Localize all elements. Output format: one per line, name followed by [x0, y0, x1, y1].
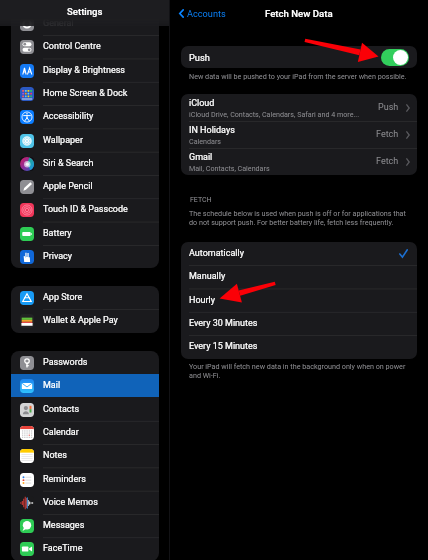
staticText: Fetch	[376, 156, 399, 167]
staticText: Passwords	[43, 357, 88, 368]
staticText: FETCH	[190, 196, 212, 204]
staticText: Touch ID & Passcode	[43, 204, 128, 215]
button[interactable]: Touch ID & Passcode	[11, 198, 159, 221]
button[interactable]: Siri & Search	[11, 152, 159, 175]
button[interactable]: Display & Brightness	[11, 59, 159, 82]
staticText: Apple Pencil	[43, 181, 93, 192]
button[interactable]: Passwords	[11, 351, 159, 374]
staticText: Messages	[43, 520, 85, 531]
staticText: Mail, Contacts, Calendars	[189, 164, 270, 172]
staticText: Gmail	[189, 152, 213, 163]
staticText: Wallet & Apple Pay	[43, 315, 118, 326]
staticText: Every 15 Minutes	[189, 341, 258, 352]
staticText: Calendars	[189, 137, 222, 145]
button[interactable]: Wallet & Apple Pay	[11, 309, 159, 332]
button[interactable]: Calendar	[11, 421, 159, 444]
button[interactable]: Battery	[11, 222, 159, 245]
button[interactable]: Control Centre	[11, 35, 159, 58]
staticText: Push	[378, 102, 399, 113]
staticText: Reminders	[43, 474, 86, 485]
staticText: Hourly	[189, 295, 216, 306]
button[interactable]: Gmail	[181, 148, 417, 175]
staticText: App Store	[43, 292, 83, 303]
button[interactable]: Hourly	[181, 289, 417, 312]
staticText: The schedule below is used when push is …	[189, 209, 415, 227]
button[interactable]: Voice Memos	[11, 491, 159, 514]
staticText: Accounts	[187, 8, 226, 19]
button[interactable]: General	[11, 12, 159, 35]
button[interactable]: Accessibility	[11, 105, 159, 128]
staticText: iCloud	[189, 98, 215, 109]
button[interactable]: Notes	[11, 444, 159, 467]
staticText: Calendar	[43, 427, 79, 438]
staticText: IN Holidays	[189, 125, 235, 136]
button[interactable]: Every 30 Minutes	[181, 312, 417, 335]
button[interactable]: FaceTime	[11, 537, 159, 560]
staticText: Automatically	[189, 248, 244, 259]
button[interactable]: Push	[181, 46, 417, 68]
button[interactable]: App Store	[11, 286, 159, 309]
button[interactable]: Privacy	[11, 245, 159, 268]
staticText: Your iPad will fetch new data in the bac…	[189, 362, 415, 380]
button[interactable]: Automatically	[181, 242, 417, 265]
button[interactable]: Manually	[181, 265, 417, 288]
staticText: iCloud Drive, Contacts, Calendars, Safar…	[189, 110, 360, 118]
staticText: Display & Brightness	[43, 65, 125, 76]
staticText: Contacts	[43, 404, 80, 415]
staticText: Fetch	[376, 129, 399, 140]
staticText: General	[43, 18, 74, 29]
staticText: Notes	[43, 450, 67, 461]
staticText: Accessibility	[43, 111, 94, 122]
button[interactable]: Wallpaper	[11, 129, 159, 152]
button[interactable]: Apple Pencil	[11, 175, 159, 198]
button[interactable]: iCloud	[181, 94, 417, 121]
button[interactable]: Every 15 Minutes	[181, 335, 417, 358]
staticText: Settings	[67, 6, 103, 17]
staticText: Home Screen & Dock	[43, 88, 128, 99]
staticText: Manually	[189, 271, 226, 282]
button[interactable]: Push toggle	[381, 49, 409, 66]
button[interactable]: Home Screen & Dock	[11, 82, 159, 105]
staticText: Voice Memos	[43, 497, 98, 508]
staticText: Privacy	[43, 251, 73, 262]
staticText: Mail	[43, 380, 61, 391]
button[interactable]: Reminders	[11, 468, 159, 491]
staticText: Control Centre	[43, 41, 101, 52]
button[interactable]: Mail	[11, 374, 159, 397]
staticText: New data will be pushed to your iPad fro…	[189, 72, 407, 80]
button[interactable]: Accounts	[177, 6, 228, 21]
staticText: FaceTime	[43, 543, 83, 554]
button[interactable]: Contacts	[11, 398, 159, 421]
staticText: Every 30 Minutes	[189, 318, 258, 329]
staticText: Fetch New Data	[265, 8, 333, 19]
staticText: Siri & Search	[43, 158, 94, 169]
staticText: Battery	[43, 228, 72, 239]
staticText: Wallpaper	[43, 135, 83, 146]
button[interactable]: IN Holidays	[181, 121, 417, 148]
staticText: Push	[189, 52, 210, 63]
button[interactable]: Messages	[11, 514, 159, 537]
